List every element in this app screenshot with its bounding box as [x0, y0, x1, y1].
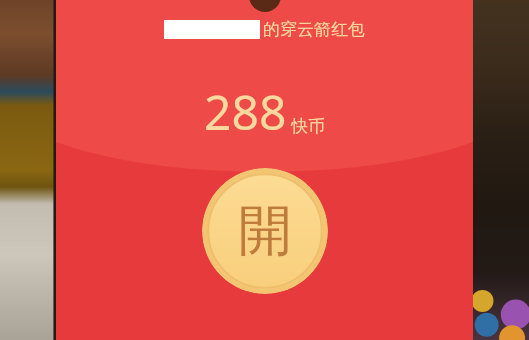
- button[interactable]: Open red packet: [202, 168, 328, 294]
- staticText: 的穿云箭红包: [263, 19, 365, 40]
- staticText: 開: [238, 197, 292, 265]
- staticText: 快币: [291, 116, 325, 137]
- staticText: 288: [204, 79, 287, 144]
- other: Sender avatar: [249, 0, 281, 12]
